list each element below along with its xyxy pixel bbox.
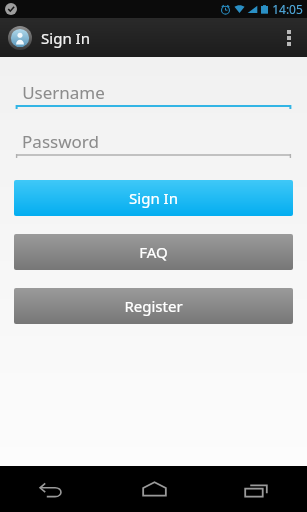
- staticText: Sign In: [41, 28, 90, 48]
- staticText: Username: [22, 81, 105, 104]
- button[interactable]: Home: [103, 466, 205, 512]
- button[interactable]: Back: [0, 466, 103, 512]
- button[interactable]: More options: [270, 18, 307, 57]
- staticText: Register: [124, 296, 183, 316]
- staticText: 14:05: [272, 1, 303, 17]
- staticText: FAQ: [139, 242, 168, 262]
- button[interactable]: Recent apps: [205, 466, 307, 512]
- button[interactable]: FAQ: [14, 234, 293, 270]
- button[interactable]: Sign In: [14, 180, 293, 216]
- button[interactable]: Register: [14, 288, 293, 324]
- staticText: Password: [22, 130, 99, 153]
- staticText: Sign In: [129, 188, 178, 208]
